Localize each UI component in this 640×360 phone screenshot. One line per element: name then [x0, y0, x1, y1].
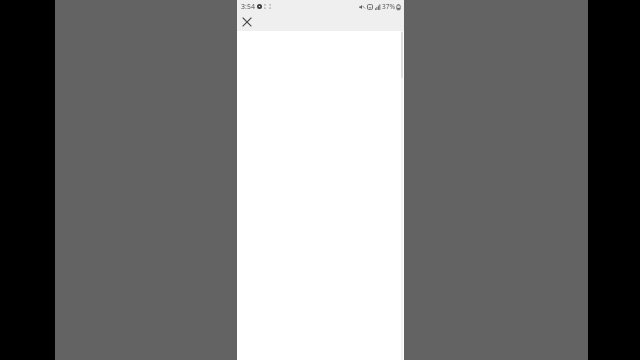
staticText: 3:54 [241, 2, 255, 12]
staticText: 37% [382, 2, 395, 11]
button[interactable]: Close [240, 15, 254, 29]
